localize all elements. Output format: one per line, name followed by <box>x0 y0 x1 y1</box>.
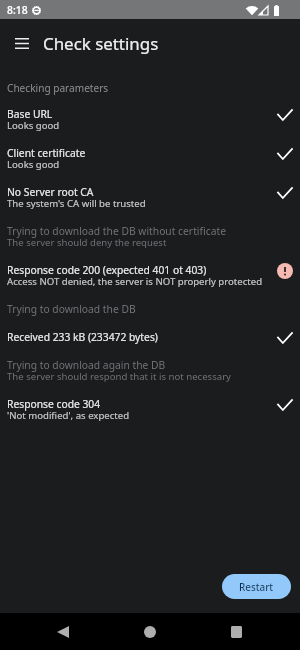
button[interactable]: Restart <box>222 574 291 599</box>
staticText: Received 233 kB (233472 bytes) <box>7 330 158 344</box>
button[interactable]: Trying to download the DB without certif… <box>0 224 300 263</box>
staticText: Checking parameters <box>7 81 109 95</box>
staticText: No Server root CA <box>7 185 94 199</box>
staticText: Client certificate <box>7 146 86 160</box>
button[interactable]: Open navigation menu <box>0 21 43 65</box>
staticText: Trying to download the DB <box>7 302 136 316</box>
staticText: Trying to download again the DB <box>7 358 166 372</box>
staticText: 8:18 <box>7 3 28 17</box>
staticText: The server should deny the request <box>7 236 167 249</box>
button[interactable]: Back <box>42 613 83 650</box>
button[interactable]: Response code 304 <box>0 397 300 436</box>
staticText: The system's CA will be trusted <box>7 197 146 210</box>
button[interactable]: Trying to download again the DB <box>0 358 300 397</box>
button[interactable]: Trying to download the DB <box>0 302 300 330</box>
staticText: Check settings <box>43 32 159 55</box>
staticText: Looks good <box>7 119 60 132</box>
button[interactable]: Response code 200 (expected 401 ot 403) <box>0 263 300 302</box>
button[interactable]: No Server root CA <box>0 185 300 224</box>
button[interactable]: Recent apps <box>216 613 256 650</box>
button[interactable]: Base URL <box>0 107 300 146</box>
staticText: 'Not modified', as expected <box>7 409 130 422</box>
button[interactable]: Received 233 kB (233472 bytes) <box>0 330 300 358</box>
staticText: Restart <box>239 580 274 593</box>
staticText: Access NOT denied, the server is NOT pro… <box>7 275 263 288</box>
staticText: Trying to download the DB without certif… <box>7 224 226 238</box>
button[interactable]: Client certificate <box>0 146 300 185</box>
button[interactable]: Home <box>130 613 170 650</box>
staticText: Response code 200 (expected 401 ot 403) <box>7 263 207 277</box>
staticText: Base URL <box>7 107 53 121</box>
staticText: Looks good <box>7 158 60 171</box>
staticText: Response code 304 <box>7 397 101 411</box>
staticText: The server should respond that it is not… <box>7 370 232 383</box>
